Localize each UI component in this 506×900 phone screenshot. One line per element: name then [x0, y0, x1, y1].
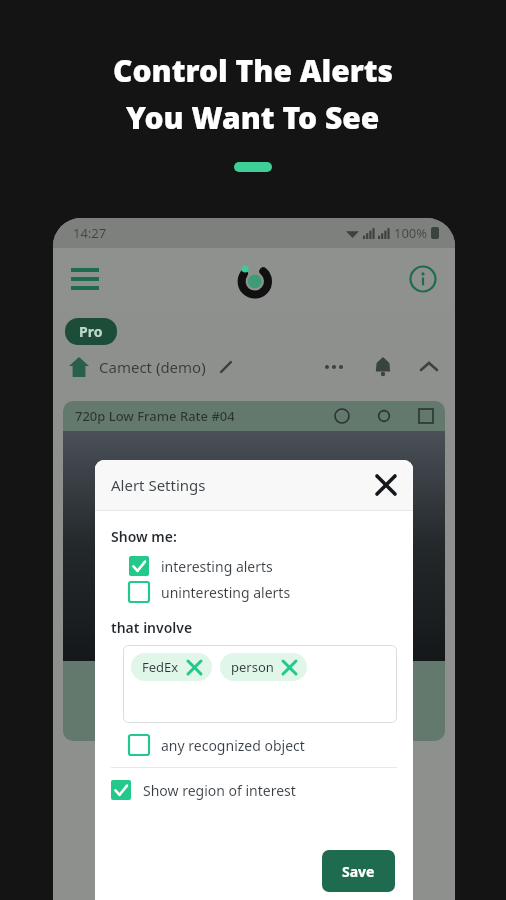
button[interactable]: interesting alerts — [129, 556, 397, 576]
staticText: Alert Settings — [111, 475, 206, 495]
staticText: Save — [342, 862, 375, 881]
button[interactable]: Info — [409, 265, 437, 293]
staticText: interesting alerts — [161, 557, 273, 576]
staticText: 14:27 — [73, 224, 107, 242]
staticText: 100% — [394, 224, 428, 242]
staticText: uninteresting alerts — [161, 583, 291, 602]
staticText: person — [231, 658, 274, 676]
button[interactable]: Notifications — [373, 357, 393, 377]
button[interactable]: person — [220, 653, 307, 681]
button[interactable]: More options — [325, 365, 343, 369]
button[interactable]: any recognized object — [129, 735, 397, 755]
other: Home — [69, 357, 89, 377]
staticText: Pro — [79, 322, 103, 341]
staticText: Show region of interest — [143, 781, 296, 800]
button[interactable]: Pro — [65, 318, 117, 345]
button[interactable]: Show region of interest — [111, 780, 397, 800]
button[interactable]: Edit — [218, 359, 234, 375]
staticText: Show me: — [111, 527, 177, 546]
button[interactable]: Close — [373, 472, 399, 498]
button[interactable]: FedEx — [131, 653, 212, 681]
staticText: that involve — [111, 618, 193, 637]
button[interactable]: Save — [322, 850, 395, 892]
button[interactable]: uninteresting alerts — [129, 582, 397, 602]
staticText: You Want To See — [126, 97, 380, 138]
staticText: FedEx — [142, 658, 179, 676]
button[interactable]: Camect logo — [234, 259, 274, 299]
button[interactable]: Menu — [71, 262, 105, 296]
staticText: Control The Alerts — [113, 50, 394, 91]
button[interactable]: Collapse — [419, 357, 439, 377]
staticText: 720p Low Frame Rate #04 — [75, 407, 235, 425]
staticText: Camect (demo) — [99, 357, 206, 377]
staticText: any recognized object — [161, 736, 305, 755]
